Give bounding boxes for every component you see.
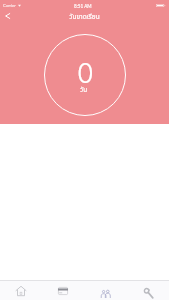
staticText: 8:51 AM bbox=[74, 3, 92, 9]
button[interactable]: Back bbox=[0, 9, 15, 23]
button[interactable]: Students bbox=[85, 281, 127, 300]
staticText: วัน bbox=[80, 85, 88, 95]
button[interactable]: Cards bbox=[42, 281, 84, 300]
button[interactable]: Settings bbox=[127, 281, 169, 300]
staticText: วันขาดเรียน bbox=[69, 12, 100, 22]
staticText: Carrier bbox=[3, 3, 16, 8]
button[interactable]: Home bbox=[0, 281, 42, 300]
staticText: 0 bbox=[77, 57, 94, 85]
